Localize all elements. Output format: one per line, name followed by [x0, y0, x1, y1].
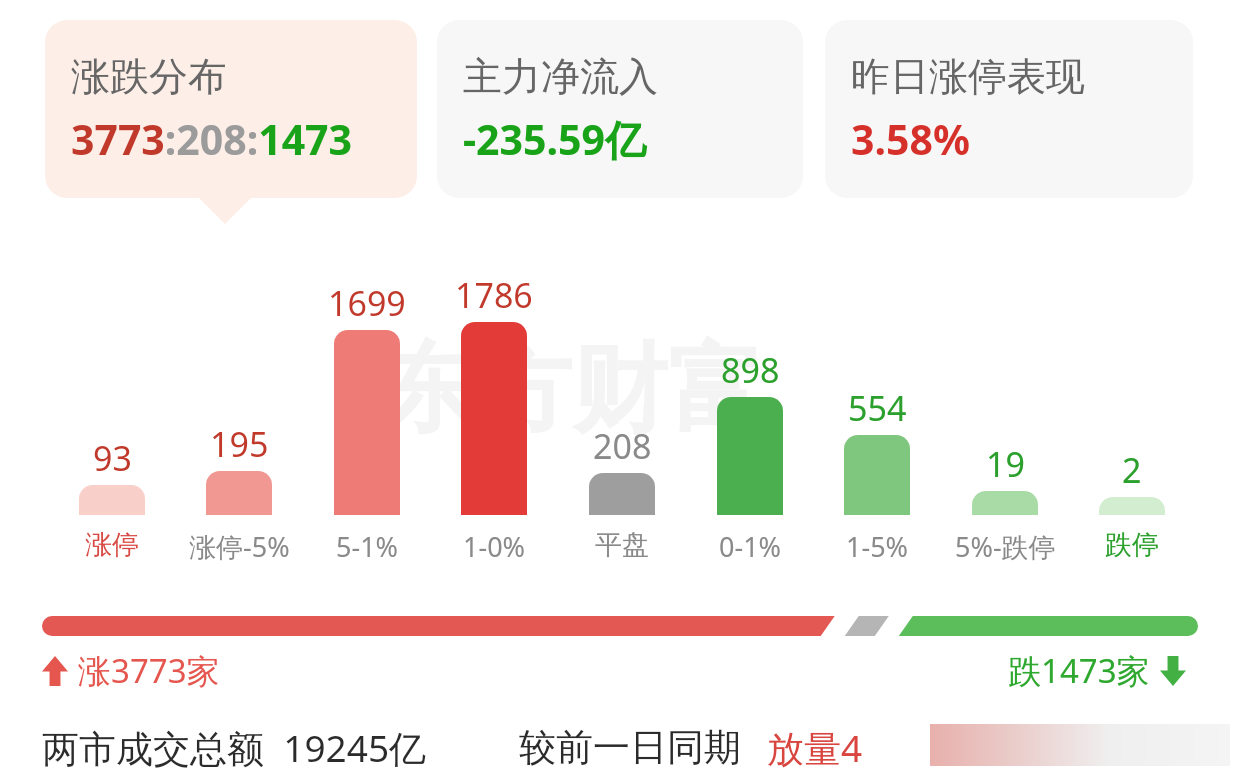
button[interactable]: 主力净流入: [437, 20, 803, 198]
other: Down: [1160, 656, 1186, 686]
staticText: 0-1%: [719, 528, 782, 565]
staticText: 5%-跌停: [955, 528, 1056, 565]
staticText: 主力净流入: [463, 52, 658, 101]
staticText: 放量4: [767, 722, 863, 773]
staticText: 208: [593, 423, 652, 469]
staticText: 554: [848, 385, 907, 431]
staticText: 3773:208:1473: [71, 111, 353, 167]
staticText: 昨日涨停表现: [851, 52, 1085, 101]
staticText: 涨停-5%: [189, 528, 290, 565]
staticText: 涨跌分布: [71, 52, 227, 101]
staticText: 5-1%: [336, 528, 399, 565]
button[interactable]: 涨跌分布: [45, 20, 417, 198]
staticText: 3.58%: [851, 111, 970, 167]
staticText: 涨停: [85, 528, 139, 562]
staticText: 两市成交总额 19245亿: [42, 722, 427, 773]
staticText: 东方财富: [380, 330, 764, 451]
staticText: 跌1473家: [1008, 648, 1150, 693]
button[interactable]: 昨日涨停表现: [825, 20, 1193, 198]
staticText: 195: [210, 421, 269, 467]
staticText: 1699: [328, 280, 406, 326]
staticText: 较前一日同期: [519, 724, 741, 771]
staticText: 898: [721, 347, 780, 393]
staticText: 93: [93, 435, 132, 481]
staticText: 平盘: [595, 528, 649, 562]
staticText: 涨3773家: [78, 648, 220, 693]
staticText: 1-0%: [463, 528, 526, 565]
staticText: -235.59亿: [463, 111, 646, 167]
other: Up: [42, 656, 68, 686]
staticText: 2: [1122, 447, 1142, 493]
staticText: 跌停: [1105, 528, 1159, 562]
staticText: 19: [986, 441, 1025, 487]
staticText: 1786: [455, 272, 533, 318]
staticText: 1-5%: [846, 528, 909, 565]
